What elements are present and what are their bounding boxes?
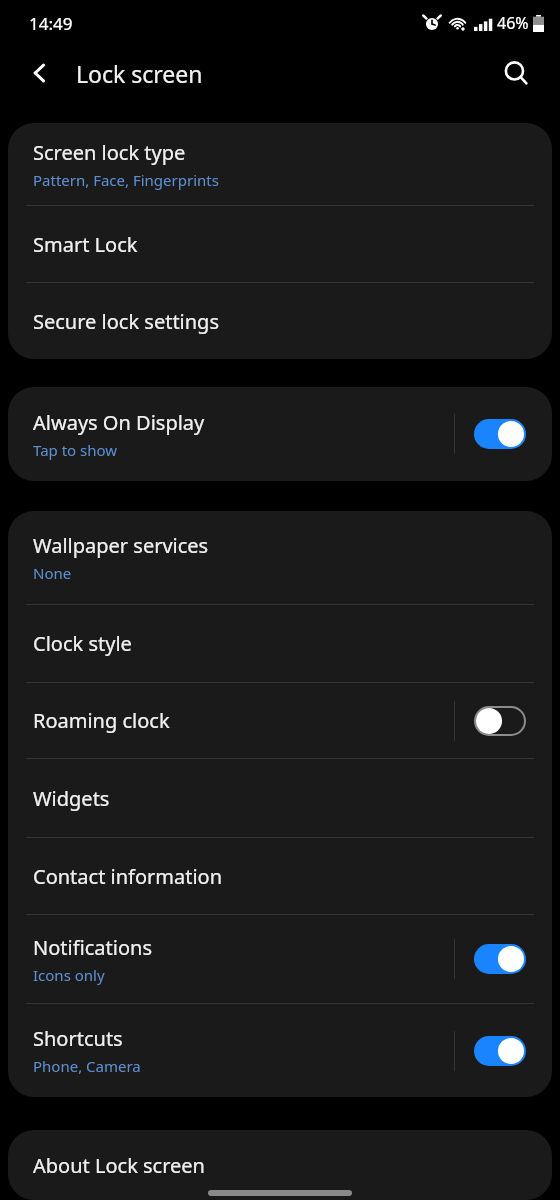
button[interactable]: Notifications xyxy=(8,915,552,1003)
button[interactable]: Screen lock type xyxy=(8,123,552,205)
button[interactable]: About Lock screen xyxy=(8,1130,552,1200)
button[interactable]: Shortcuts on xyxy=(474,1036,526,1066)
staticText: Widgets xyxy=(33,785,110,812)
staticText: Smart Lock xyxy=(33,231,138,258)
button[interactable]: Widgets xyxy=(8,759,552,837)
button[interactable]: Smart Lock xyxy=(8,206,552,282)
staticText: Clock style xyxy=(33,630,132,657)
button[interactable]: Contact information xyxy=(8,838,552,914)
button[interactable]: Notifications on xyxy=(474,944,526,974)
staticText: Contact information xyxy=(33,863,223,890)
staticText: About Lock screen xyxy=(33,1152,205,1179)
button[interactable]: Wallpaper services xyxy=(8,511,552,604)
button[interactable]: Search xyxy=(494,51,538,95)
staticText: Shortcuts xyxy=(33,1025,123,1052)
button[interactable]: Secure lock settings xyxy=(8,283,552,359)
staticText: Phone, Camera xyxy=(33,1056,141,1076)
staticText: Wallpaper services xyxy=(33,532,209,559)
button[interactable]: Shortcuts xyxy=(8,1004,552,1097)
staticText: Pattern, Face, Fingerprints xyxy=(33,170,219,190)
button[interactable]: Roaming clock xyxy=(8,683,552,758)
staticText: Notifications xyxy=(33,934,152,961)
button[interactable]: Roaming clock off xyxy=(474,706,526,736)
staticText: Screen lock type xyxy=(33,139,186,166)
staticText: Always On Display xyxy=(33,409,205,436)
staticText: Roaming clock xyxy=(33,707,170,734)
button[interactable]: Always On Display xyxy=(8,387,552,481)
button[interactable]: Always On Display on xyxy=(474,419,526,449)
button[interactable]: Back xyxy=(18,51,62,95)
staticText: Tap to show xyxy=(33,440,118,460)
staticText: Icons only xyxy=(33,965,105,985)
staticText: 14:49 xyxy=(29,12,73,35)
staticText: Secure lock settings xyxy=(33,308,219,335)
staticText: 46% xyxy=(497,12,529,34)
button[interactable]: Clock style xyxy=(8,605,552,682)
staticText: None xyxy=(33,563,72,583)
staticText: Lock screen xyxy=(76,58,203,89)
